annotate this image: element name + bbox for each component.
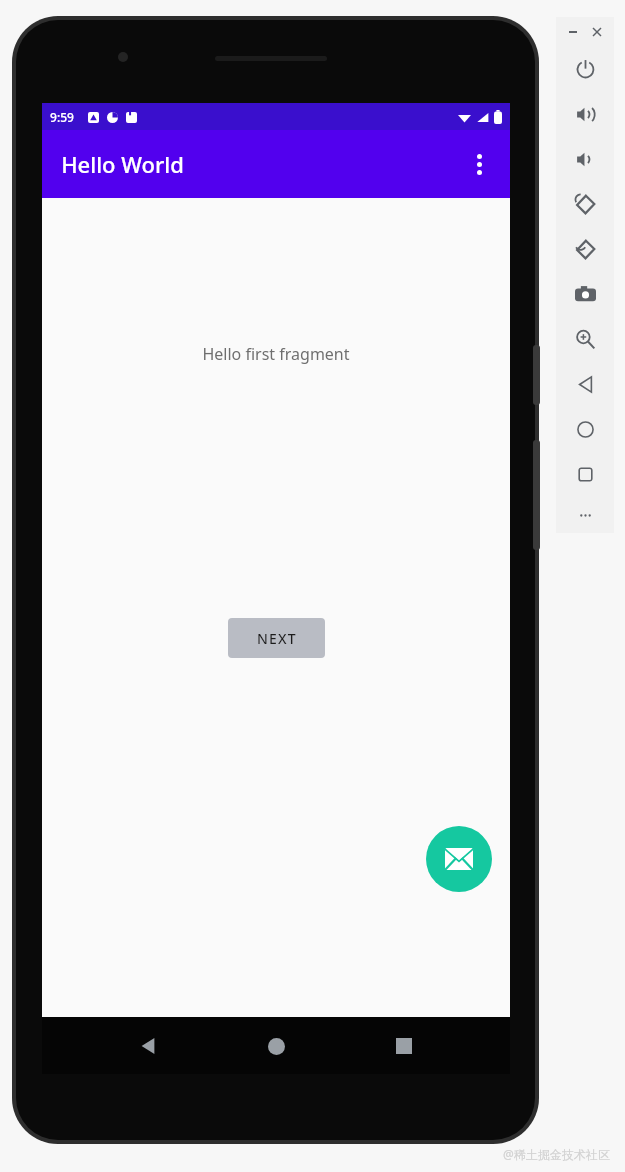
staticText: 9:59: [50, 109, 74, 125]
button[interactable]: Rotate right: [556, 227, 614, 272]
staticText: Hello first fragment: [202, 343, 350, 365]
button[interactable]: Rotate left: [556, 182, 614, 227]
button[interactable]: Recents: [382, 1024, 426, 1068]
button[interactable]: Volume down: [556, 137, 614, 182]
button[interactable]: Screenshot: [556, 272, 614, 317]
button[interactable]: Send email: [426, 826, 492, 892]
button[interactable]: Volume up: [556, 92, 614, 137]
button[interactable]: More: [556, 497, 614, 533]
button[interactable]: Overview: [556, 452, 614, 497]
staticText: Hello World: [61, 149, 184, 179]
button[interactable]: Back: [126, 1024, 170, 1068]
staticText: NEXT: [257, 629, 297, 648]
button[interactable]: NEXT: [228, 618, 325, 658]
staticText: @稀土掘金技术社区: [503, 1146, 610, 1162]
button[interactable]: Power: [556, 47, 614, 92]
button[interactable]: Home: [556, 407, 614, 452]
button[interactable]: Minimize: [566, 25, 580, 39]
button[interactable]: Back: [556, 362, 614, 407]
button[interactable]: More options: [458, 143, 500, 185]
button[interactable]: Zoom: [556, 317, 614, 362]
button[interactable]: Home: [254, 1024, 298, 1068]
button[interactable]: Close: [590, 25, 604, 39]
